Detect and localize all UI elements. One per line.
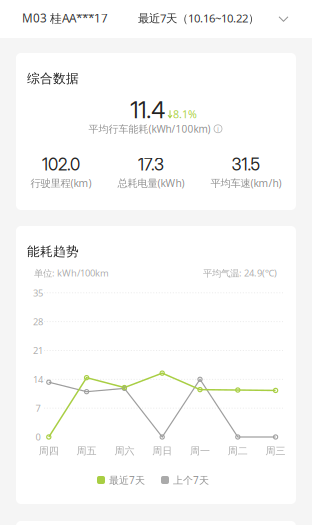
staticText: 7	[35, 402, 40, 414]
staticText: 周二	[228, 445, 248, 457]
staticText: i	[217, 124, 219, 134]
staticText: 上个7天	[173, 473, 209, 487]
staticText: 102.0	[42, 154, 80, 175]
button[interactable]: M03 桂AA***17	[0, 1, 122, 35]
staticText: 11.4	[130, 96, 165, 124]
staticText: 35	[33, 286, 43, 299]
staticText: 最近7天（10.16~10.22）	[138, 10, 259, 26]
staticText: 平均车速(km/h)	[210, 176, 281, 190]
staticText: 平均气温: 24.9(℃)	[203, 267, 277, 279]
staticText: 周三	[266, 445, 286, 457]
staticText: 周日	[152, 445, 172, 457]
staticText: 周五	[77, 445, 97, 457]
staticText: 14	[33, 373, 43, 386]
staticText: 综合数据	[27, 70, 79, 86]
staticText: 行驶里程(km)	[30, 176, 91, 190]
staticText: 能耗趋势	[27, 243, 79, 259]
staticText: 最近7天	[109, 473, 145, 487]
button[interactable]: 最近7天（10.16~10.22）	[138, 1, 288, 35]
staticText: 28	[33, 315, 43, 328]
staticText: 17.3	[138, 154, 164, 175]
staticText: 总耗电量(kWh)	[117, 176, 184, 190]
staticText: 8.1%	[173, 107, 197, 121]
staticText: 平均行车能耗(kWh/100km)	[88, 122, 210, 136]
staticText: 31.5	[231, 154, 260, 175]
staticText: 周六	[114, 445, 134, 457]
staticText: 0	[35, 431, 40, 443]
staticText: 周四	[39, 445, 59, 457]
staticText: 周一	[190, 445, 210, 457]
staticText: M03 桂AA***17	[22, 10, 108, 26]
staticText: 21	[33, 344, 43, 357]
staticText: 单位: kWh/100km	[34, 267, 109, 279]
